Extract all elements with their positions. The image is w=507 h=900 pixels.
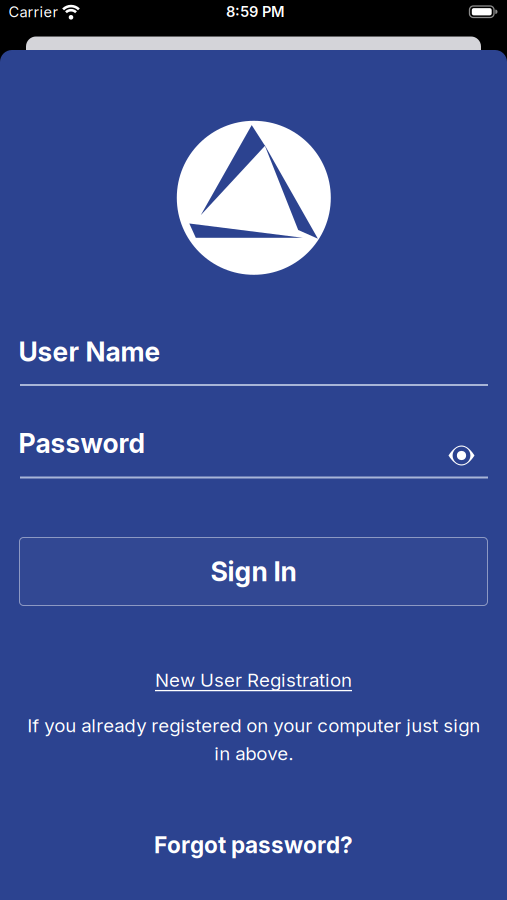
- staticText: Sign In: [210, 556, 296, 587]
- staticText: New User Registration: [155, 669, 352, 691]
- staticText: If you already registered on your comput…: [27, 714, 480, 764]
- staticText: Password: [18, 427, 145, 459]
- staticText: Forgot password?: [154, 832, 353, 858]
- staticText: Carrier: [8, 3, 58, 20]
- button[interactable]: New User Registration: [0, 668, 507, 692]
- button[interactable]: Password: [20, 430, 488, 478]
- button[interactable]: Forgot password?: [0, 831, 507, 859]
- button[interactable]: User Name: [20, 338, 488, 386]
- staticText: 8:59 PM: [226, 3, 285, 20]
- staticText: User Name: [18, 336, 160, 367]
- button[interactable]: Sign In: [19, 537, 487, 605]
- button[interactable]: Show password: [446, 443, 476, 467]
